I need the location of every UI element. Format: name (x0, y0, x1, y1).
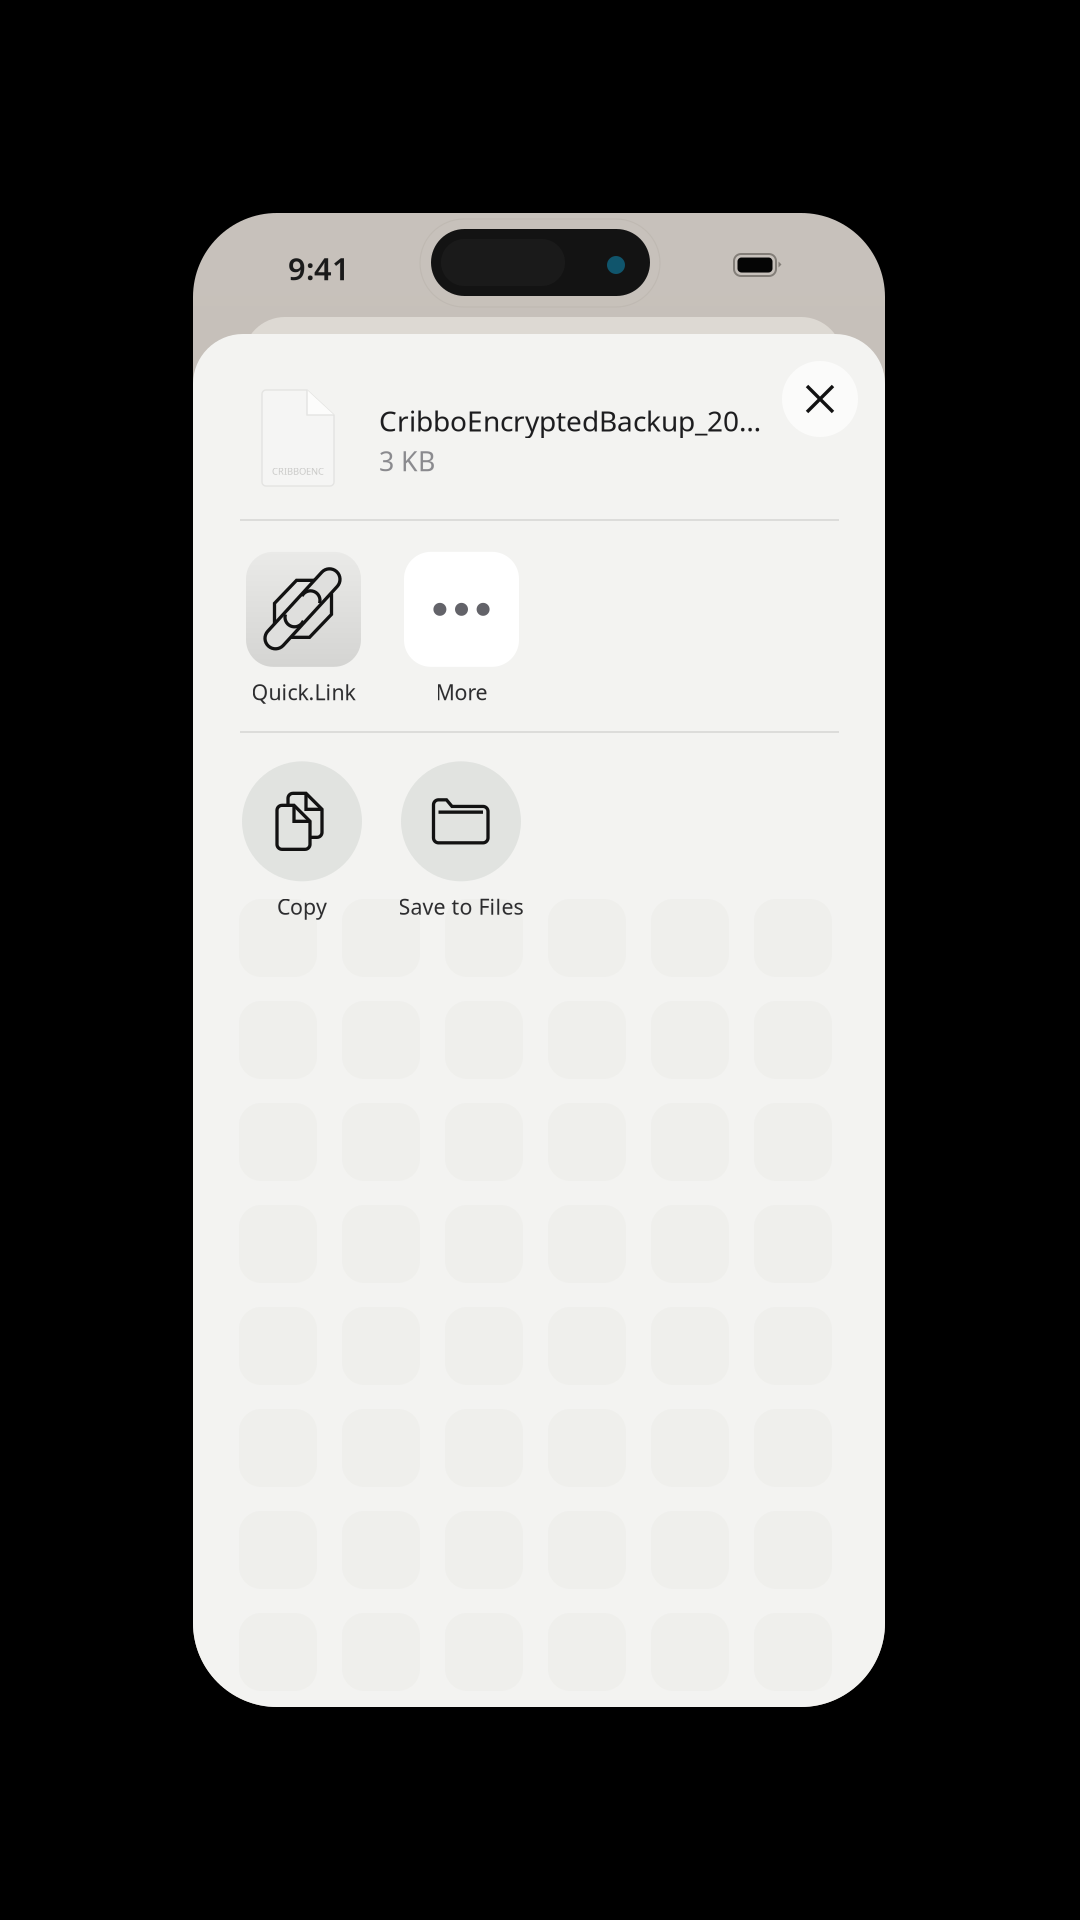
staticText: Save to Files (398, 892, 523, 921)
staticText: CRIBBOENC (272, 465, 324, 477)
button[interactable]: More (321, 529, 601, 729)
button[interactable]: Copy (162, 741, 442, 941)
button[interactable]: Quick.Link (163, 529, 443, 729)
staticText: More (435, 678, 487, 706)
staticText: 9:41 (288, 248, 350, 289)
staticText: Copy (277, 892, 327, 921)
button[interactable]: Save to Files (321, 741, 601, 941)
staticText: CribboEncryptedBackup_20… (379, 402, 761, 439)
button[interactable]: Close (782, 361, 858, 437)
staticText: 3 KB (379, 443, 435, 479)
staticText: Quick.Link (251, 678, 355, 706)
